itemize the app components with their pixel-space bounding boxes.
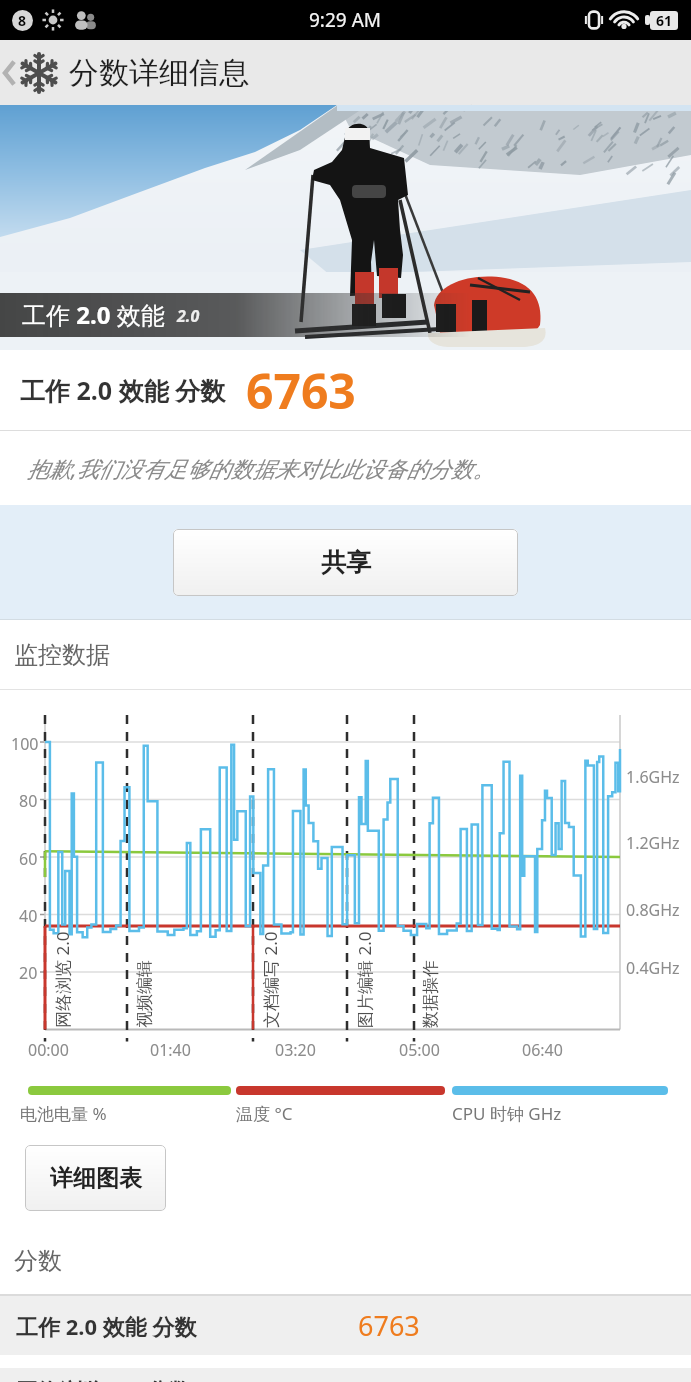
staticText: 共享 bbox=[321, 547, 371, 578]
staticText: 监控数据 bbox=[14, 640, 110, 670]
staticText: 00:00 bbox=[28, 1039, 69, 1061]
staticText: 分数详细信息 bbox=[69, 54, 249, 92]
staticText: 03:20 bbox=[275, 1039, 316, 1061]
staticText: 60 bbox=[19, 848, 38, 870]
staticText: 文档编写 2.0 bbox=[259, 931, 282, 1028]
staticText: 图片编辑 2.0 bbox=[353, 931, 376, 1028]
staticText: 6763 bbox=[246, 358, 356, 423]
staticText: 40 bbox=[19, 905, 38, 927]
staticText: 网络浏览 2.0 bbox=[51, 931, 74, 1028]
button[interactable]: 网络浏览 2.0 分数 bbox=[0, 1368, 691, 1382]
staticText: 20 bbox=[19, 962, 38, 984]
staticText: 100 bbox=[11, 733, 39, 755]
staticText: 1.2GHz bbox=[626, 832, 680, 854]
staticText: 数据操作 bbox=[420, 960, 441, 1028]
staticText: 温度 °C bbox=[236, 1102, 293, 1125]
staticText: 0.8GHz bbox=[626, 899, 680, 921]
staticText: 01:40 bbox=[150, 1039, 191, 1061]
button[interactable]: 工作 2.0 效能 分数 bbox=[0, 1296, 691, 1355]
staticText: 网络浏览 2.0 分数 bbox=[16, 1375, 191, 1382]
staticText: 详细图表 bbox=[50, 1164, 142, 1193]
staticText: 抱歉,我们没有足够的数据来对比此设备的分数。 bbox=[27, 453, 495, 483]
staticText: CPU 时钟 GHz bbox=[452, 1102, 562, 1125]
staticText: 61 bbox=[656, 11, 673, 30]
button[interactable]: 共享 bbox=[173, 529, 518, 596]
staticText: 工作 2.0 效能 分数 bbox=[20, 373, 226, 407]
staticText: 工作 2.0 效能 bbox=[22, 298, 165, 331]
button[interactable]: 分数详细信息 bbox=[0, 40, 691, 105]
staticText: 6763 bbox=[358, 1307, 420, 1344]
staticText: 电池电量 % bbox=[20, 1102, 107, 1125]
staticText: 0.4GHz bbox=[626, 957, 680, 979]
staticText: 1.6GHz bbox=[626, 766, 680, 788]
staticText: 8 bbox=[18, 11, 27, 30]
staticText: 05:00 bbox=[399, 1039, 440, 1061]
staticText: 工作 2.0 效能 分数 bbox=[16, 1311, 197, 1341]
button[interactable]: 详细图表 bbox=[25, 1145, 166, 1211]
staticText: 分数 bbox=[14, 1246, 62, 1276]
staticText: 80 bbox=[19, 790, 38, 812]
staticText: 06:40 bbox=[522, 1039, 563, 1061]
staticText: 视频编辑 bbox=[134, 960, 155, 1028]
staticText: 9:29 AM bbox=[309, 7, 382, 33]
staticText: 2.0 bbox=[177, 305, 200, 327]
